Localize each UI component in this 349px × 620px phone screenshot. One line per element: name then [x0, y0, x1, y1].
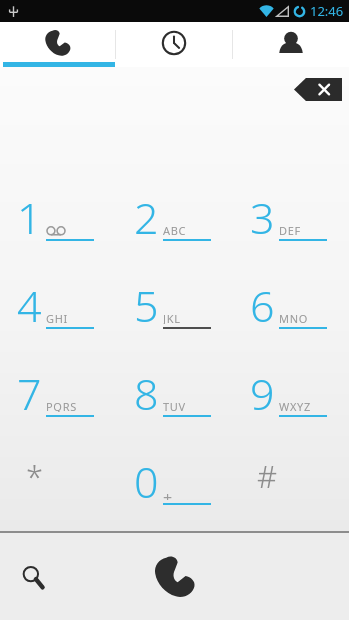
staticText: *	[26, 455, 44, 497]
button[interactable]: 4	[0, 255, 117, 343]
staticText: 9	[250, 364, 275, 423]
staticText: TUV	[163, 399, 186, 412]
button[interactable]: 8	[117, 343, 233, 431]
staticText: 6	[250, 276, 275, 335]
staticText: GHI	[46, 311, 68, 324]
staticText: 12:46	[310, 2, 344, 20]
staticText: WXYZ	[279, 399, 311, 412]
staticText: 8	[134, 364, 159, 423]
staticText: PQRS	[46, 399, 77, 412]
button[interactable]: 0	[117, 431, 233, 519]
staticText: +	[163, 487, 173, 500]
staticText: DEF	[279, 223, 301, 236]
button[interactable]: *	[0, 431, 117, 519]
button[interactable]: 9	[233, 343, 349, 431]
staticText: JKL	[163, 311, 181, 324]
button[interactable]: #	[233, 431, 349, 519]
button[interactable]: 7	[0, 343, 117, 431]
button[interactable]: 5	[117, 255, 233, 343]
staticText: 5	[134, 276, 159, 335]
button[interactable]: 2	[117, 167, 233, 255]
button[interactable]: Dialer	[0, 22, 115, 67]
staticText: 7	[17, 364, 42, 423]
staticText: 2	[134, 188, 159, 247]
staticText: MNO	[279, 311, 309, 324]
staticText: #	[257, 455, 278, 497]
button[interactable]: Contacts	[233, 22, 349, 67]
staticText: 1	[17, 188, 42, 247]
staticText: 3	[250, 188, 275, 247]
button[interactable]: Call	[139, 541, 211, 613]
staticText: 0	[134, 452, 159, 511]
button[interactable]: Search	[4, 548, 62, 606]
button[interactable]: 1	[0, 167, 117, 255]
button[interactable]: 6	[233, 255, 349, 343]
staticText: ABC	[163, 223, 187, 236]
button[interactable]: Backspace	[294, 78, 342, 101]
staticText: 4	[17, 276, 42, 335]
button[interactable]: 3	[233, 167, 349, 255]
button[interactable]: Call history	[116, 22, 232, 67]
